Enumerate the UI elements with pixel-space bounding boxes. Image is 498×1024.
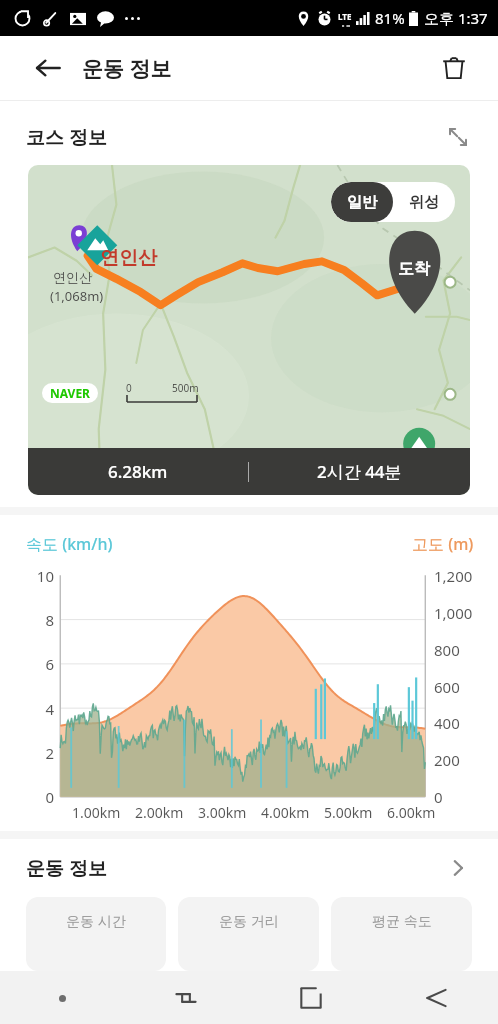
button[interactable]: 위성: [393, 182, 455, 222]
button[interactable]: Back: [30, 50, 66, 86]
staticText: 일반: [347, 193, 377, 212]
staticText: 운동 정보: [82, 54, 172, 83]
staticText: 고도 (m): [412, 533, 474, 555]
staticText: 평균 속도: [372, 911, 432, 930]
staticText: 운동 정보: [26, 855, 107, 881]
staticText: 200: [434, 750, 460, 770]
button[interactable]: 평균 속도: [331, 897, 472, 971]
button[interactable]: Back: [414, 976, 458, 1020]
button[interactable]: 운동 시간: [26, 897, 166, 971]
staticText: 400: [434, 713, 460, 733]
staticText: (1,068m): [50, 287, 104, 305]
button[interactable]: Recents: [164, 976, 208, 1020]
staticText: 3.00km: [198, 803, 247, 822]
staticText: 1,000: [434, 603, 473, 623]
button[interactable]: Indicator: [42, 978, 82, 1018]
button[interactable]: 일반: [331, 182, 393, 222]
staticText: 도착: [398, 259, 430, 279]
staticText: 6: [34, 654, 54, 674]
staticText: 500m: [172, 381, 199, 395]
button[interactable]: 운동 정보: [0, 839, 498, 897]
button[interactable]: Delete: [434, 48, 474, 88]
staticText: 운동 거리: [219, 911, 279, 930]
staticText: 2.00km: [135, 803, 184, 822]
staticText: 4: [34, 699, 54, 719]
staticText: 오후 1:37: [424, 8, 488, 28]
staticText: 코스 정보: [26, 124, 107, 150]
staticText: NAVER: [50, 385, 90, 401]
staticText: 0: [126, 381, 132, 395]
staticText: 2시간 44분: [317, 460, 402, 483]
staticText: 4.00km: [261, 803, 310, 822]
staticText: 2: [34, 743, 54, 763]
staticText: 0: [34, 787, 54, 807]
staticText: 연인산: [100, 246, 157, 270]
staticText: 8: [34, 610, 54, 630]
button[interactable]: 운동 거리: [178, 897, 319, 971]
staticText: 1,200: [434, 566, 473, 586]
staticText: 속도 (km/h): [26, 533, 113, 555]
staticText: 10: [34, 566, 54, 586]
staticText: 위성: [409, 193, 439, 212]
staticText: 운동 시간: [66, 911, 126, 930]
button[interactable]: 연인산: [28, 165, 470, 495]
staticText: 600: [434, 677, 460, 697]
button[interactable]: Home: [289, 976, 333, 1020]
staticText: 연인산: [53, 269, 92, 285]
staticText: LTE: [338, 11, 352, 22]
staticText: 0: [434, 787, 443, 807]
staticText: 81%: [375, 8, 405, 28]
staticText: 5.00km: [324, 803, 373, 822]
staticText: 1.00km: [72, 803, 121, 822]
button[interactable]: Expand map: [440, 119, 476, 155]
staticText: 6.00km: [387, 803, 436, 822]
staticText: 800: [434, 640, 460, 660]
staticText: 6.28km: [108, 460, 168, 483]
